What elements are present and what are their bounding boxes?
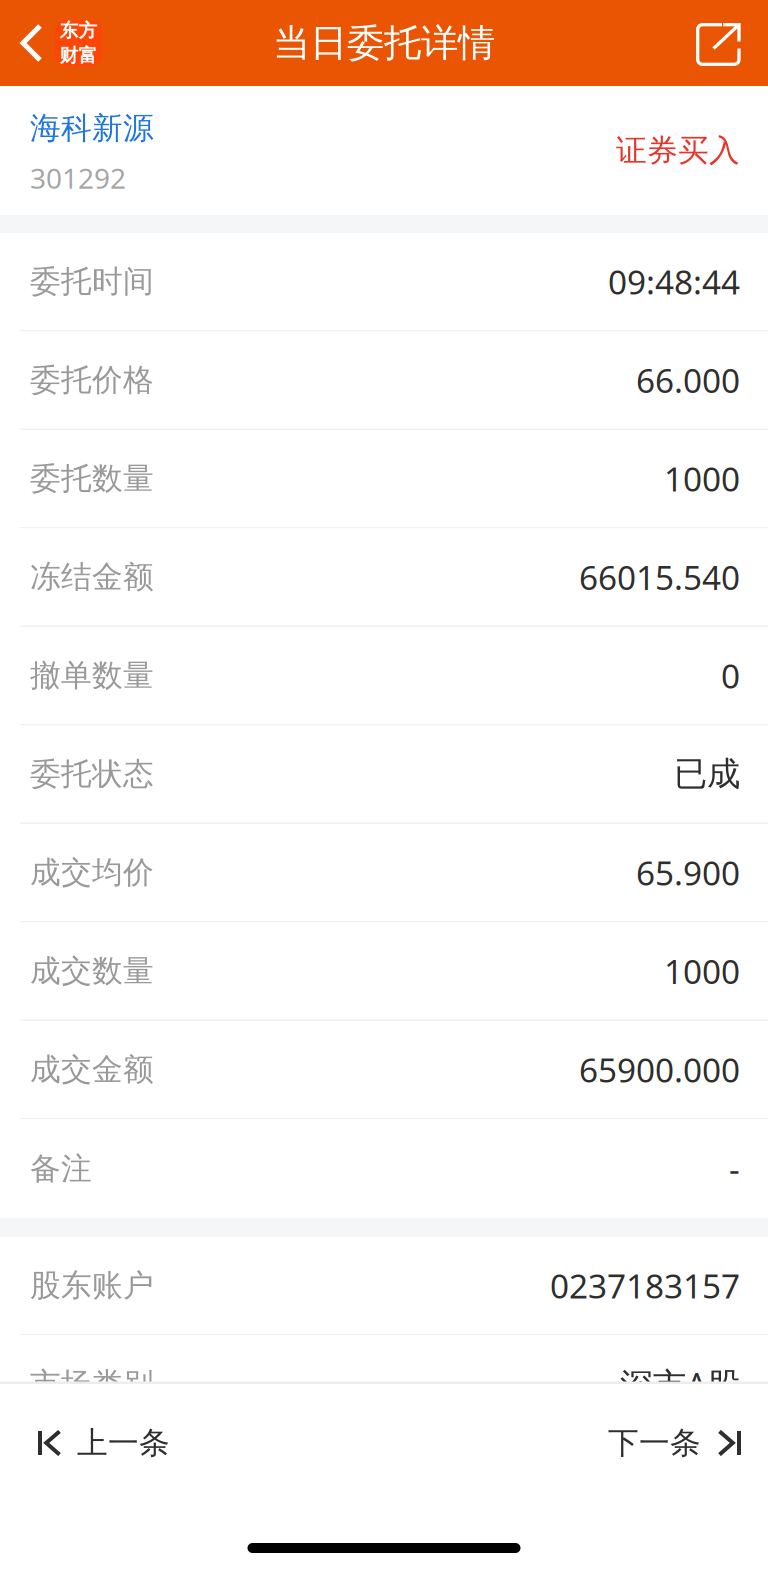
staticText: 成交金额: [30, 1051, 154, 1088]
staticText: 证券买入: [616, 132, 740, 169]
staticText: 66015.540: [579, 555, 740, 599]
staticText: 已成: [674, 753, 740, 794]
staticText: 撤单数量: [30, 657, 154, 694]
staticText: 0: [721, 653, 740, 698]
staticText: 1000: [664, 949, 740, 993]
staticText: 委托状态: [30, 755, 154, 793]
staticText: 市场类别: [30, 1365, 154, 1403]
button[interactable]: 上一条: [0, 1384, 194, 1502]
button[interactable]: 分享: [696, 0, 768, 86]
staticText: 海科新源: [30, 110, 154, 147]
staticText: 深市A股: [620, 1362, 740, 1406]
staticText: 委托时间: [30, 263, 154, 300]
staticText: 0237183157: [550, 1263, 740, 1308]
staticText: 301292: [30, 159, 126, 196]
staticText: 1000: [664, 456, 740, 501]
staticText: 成交均价: [30, 854, 154, 891]
staticText: 委托价格: [30, 361, 154, 399]
staticText: 委托数量: [30, 460, 154, 497]
staticText: 65.900: [636, 850, 740, 895]
staticText: 66.000: [636, 358, 740, 402]
staticText: -: [729, 1147, 740, 1191]
staticText: 上一条: [77, 1424, 170, 1462]
staticText: 财富: [59, 44, 97, 67]
staticText: 65900.000: [579, 1047, 740, 1092]
staticText: 东方: [59, 19, 97, 42]
button[interactable]: 下一条: [584, 1384, 768, 1502]
staticText: 成交数量: [30, 952, 154, 990]
button[interactable]: 返回 东方财富: [0, 0, 102, 86]
staticText: 股东账户: [30, 1267, 154, 1304]
staticText: 下一条: [608, 1424, 701, 1462]
staticText: 冻结金额: [30, 558, 154, 596]
staticText: 备注: [30, 1150, 92, 1188]
staticText: 09:48:44: [608, 259, 740, 304]
button[interactable]: 海科新源: [30, 105, 154, 196]
staticText: 当日委托详情: [273, 20, 495, 66]
